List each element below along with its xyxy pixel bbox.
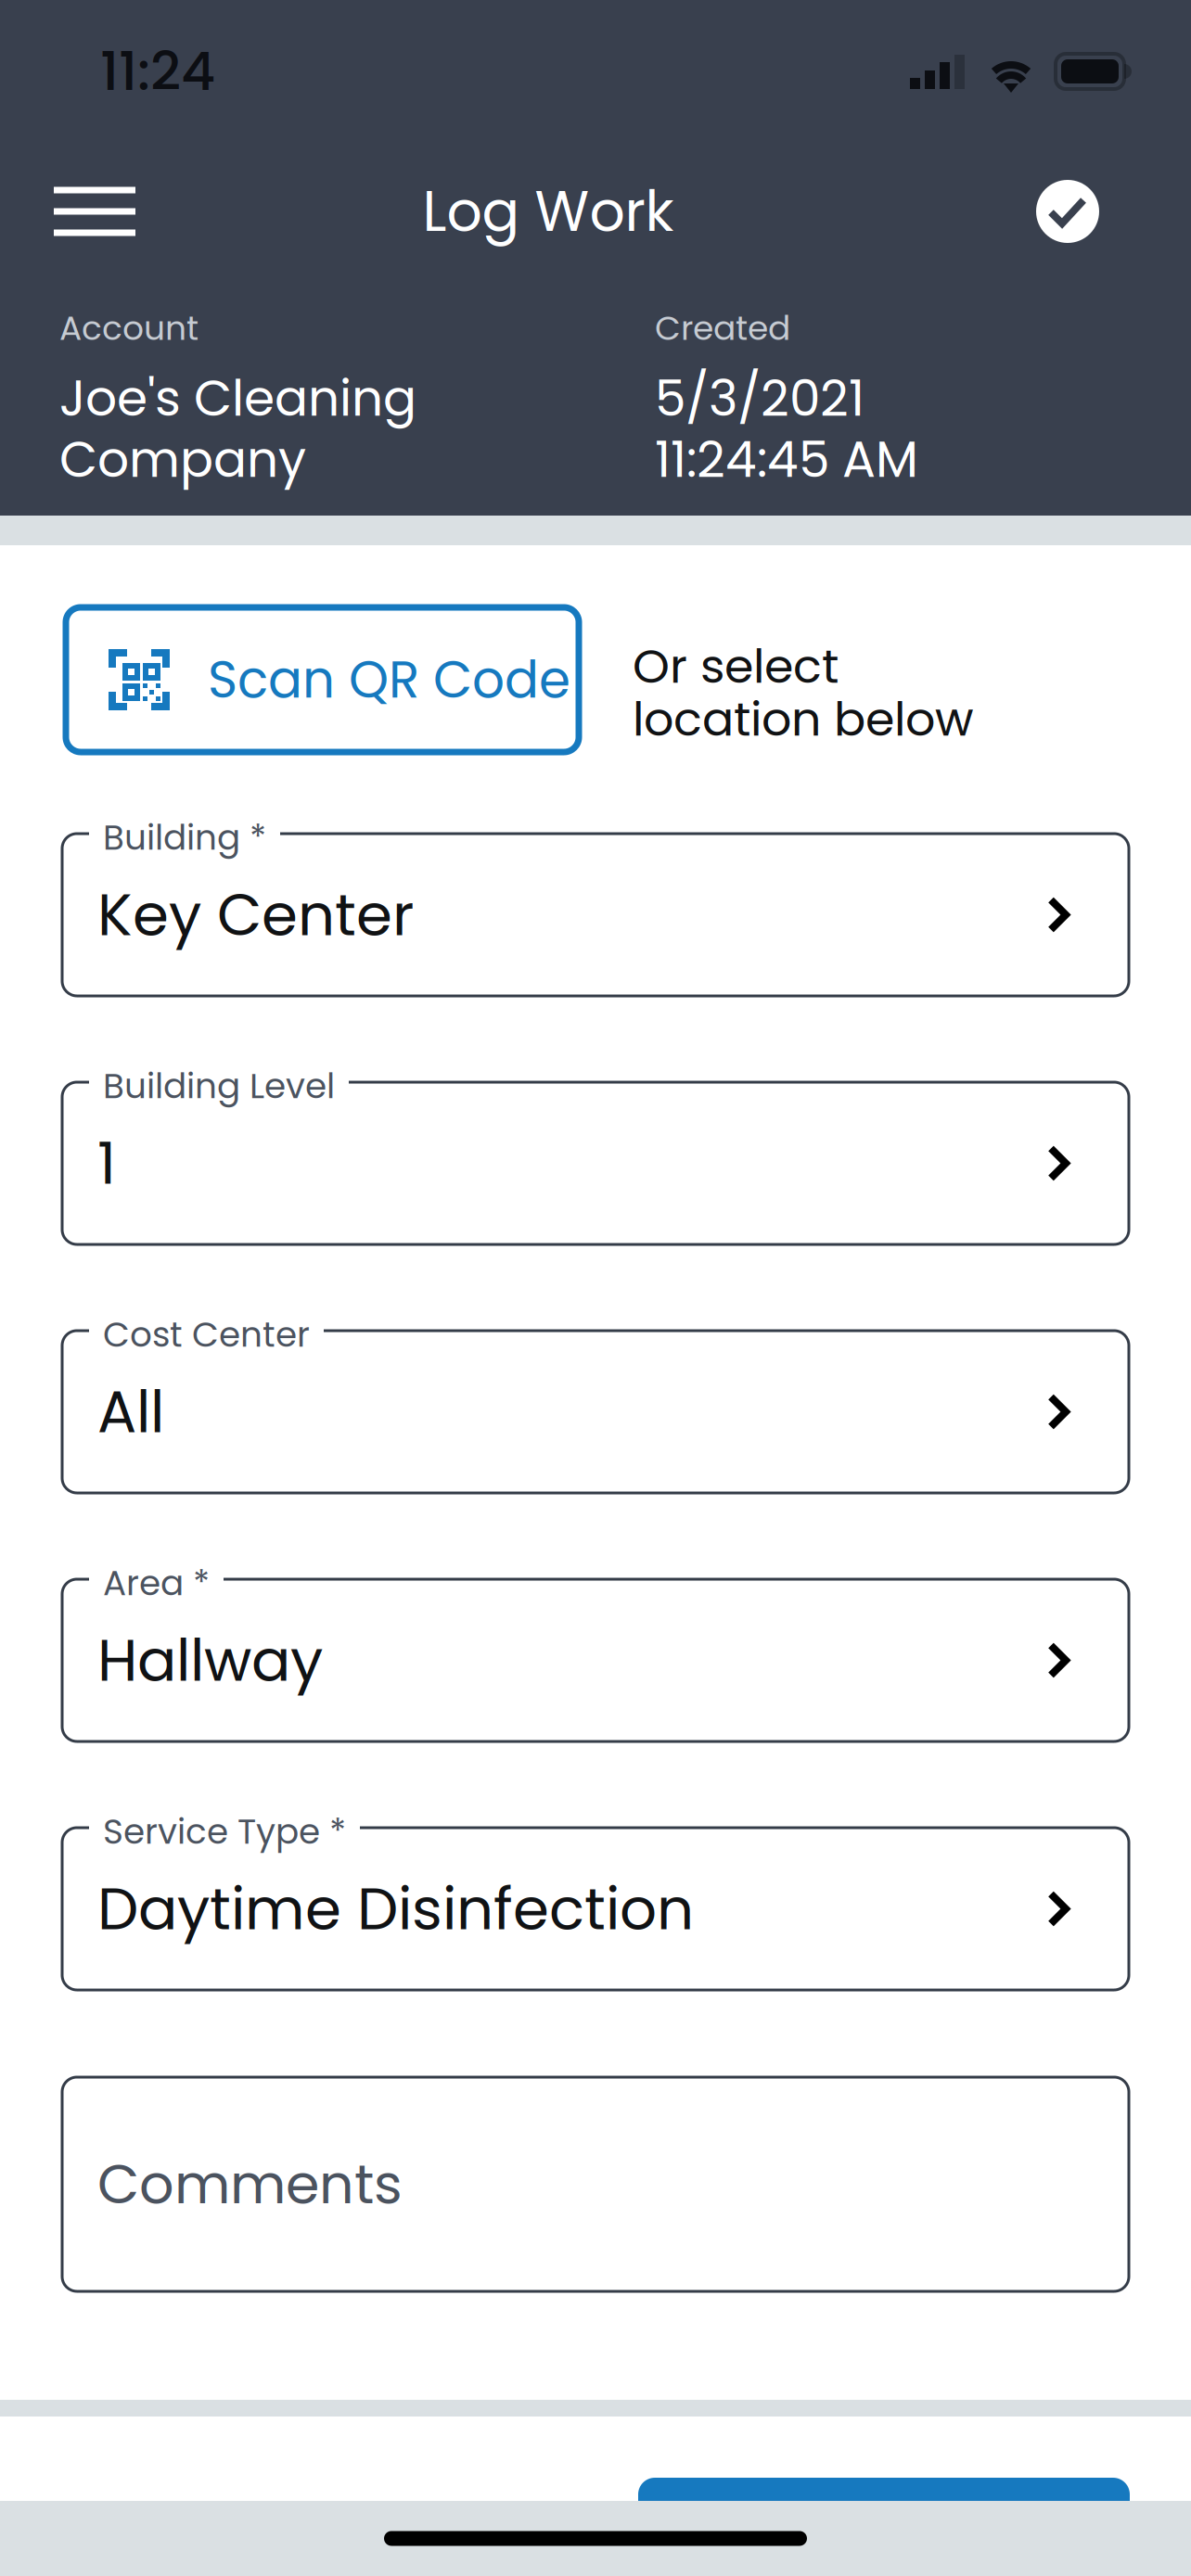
button[interactable]: Scan QR Code xyxy=(66,607,579,752)
staticText: Comments xyxy=(97,2146,403,2222)
button[interactable]: 1 xyxy=(62,1082,1129,1244)
staticText: Service Type * xyxy=(103,1807,346,1856)
staticText: Building * xyxy=(103,813,266,862)
staticText: Log Work xyxy=(423,172,674,250)
staticText: Area * xyxy=(103,1559,210,1607)
staticText: Cost Center xyxy=(103,1310,310,1359)
staticText: 11:24 xyxy=(100,34,215,109)
staticText: Scan QR Code xyxy=(208,644,570,715)
staticText: Account xyxy=(59,305,198,351)
button[interactable]: Comments xyxy=(62,2077,1129,2291)
staticText: Joe's Cleaning xyxy=(59,364,416,433)
button[interactable]: Hallway xyxy=(62,1579,1129,1741)
staticText: Key Center xyxy=(97,874,414,955)
staticText: Or select xyxy=(633,633,839,699)
staticText: Building Level xyxy=(103,1062,335,1110)
staticText: Company xyxy=(59,425,306,494)
button[interactable]: All xyxy=(62,1331,1129,1493)
staticText: 5/3/2021 xyxy=(655,364,864,433)
staticText: location below xyxy=(633,686,974,752)
staticText: 11:24:45 AM xyxy=(655,425,918,494)
staticText: All xyxy=(97,1371,164,1452)
staticText: 1 xyxy=(97,1123,116,1204)
button[interactable]: Submit xyxy=(638,2478,1191,2501)
button[interactable]: Menu xyxy=(37,143,152,280)
staticText: Daytime Disinfection xyxy=(97,1868,694,1949)
staticText: Hallway xyxy=(97,1620,323,1701)
button[interactable]: Key Center xyxy=(62,834,1129,996)
button[interactable]: Daytime Disinfection xyxy=(62,1828,1129,1990)
button[interactable]: Save xyxy=(1019,143,1116,280)
staticText: Created xyxy=(655,305,790,351)
